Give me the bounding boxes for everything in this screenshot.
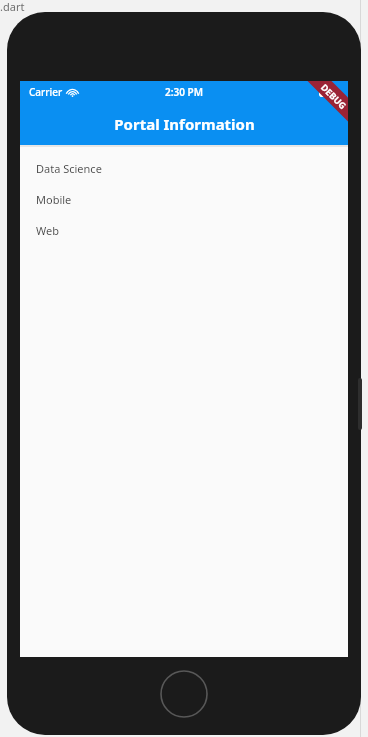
button[interactable]: Mobile [20,184,348,215]
staticText: Web [36,223,59,238]
staticText: Carrier [29,85,63,99]
staticText: Data Science [36,161,102,176]
staticText: .dart [0,0,25,14]
button[interactable]: Data Science [20,153,348,184]
staticText: DEBUG [319,81,348,111]
staticText: Portal Information [114,114,255,134]
staticText: Mobile [36,192,72,207]
button[interactable]: Home [160,670,208,718]
button[interactable]: Web [20,215,348,246]
staticText: 2:30 PM [165,85,203,99]
